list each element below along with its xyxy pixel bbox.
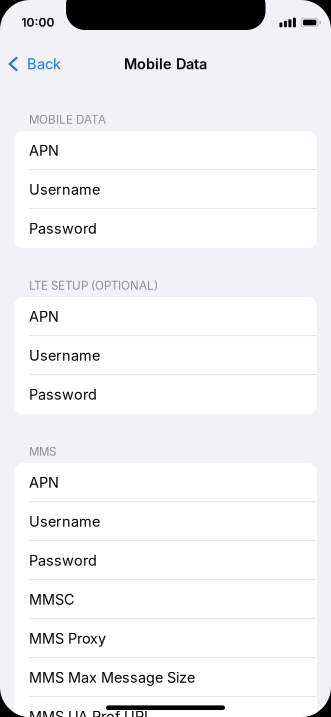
button[interactable]: Password (14, 541, 317, 580)
staticText: Username (29, 181, 100, 198)
button[interactable]: MMSC (14, 580, 317, 619)
button[interactable]: Password (14, 375, 317, 414)
button[interactable]: MMS UA Prof URL (14, 697, 317, 717)
staticText: MOBILE DATA (29, 112, 106, 126)
staticText: Password (29, 386, 97, 403)
button[interactable]: APN (14, 297, 317, 336)
button[interactable]: Password (14, 209, 317, 248)
button[interactable]: APN (14, 131, 317, 170)
staticText: APN (29, 474, 59, 491)
staticText: MMS Proxy (29, 630, 106, 647)
staticText: MMS Max Message Size (29, 669, 195, 686)
staticText: 10:00 (21, 15, 54, 30)
button[interactable]: Username (14, 336, 317, 375)
staticText: Back (27, 55, 61, 73)
staticText: MMSC (29, 591, 75, 608)
button[interactable]: Back (0, 49, 71, 79)
button[interactable]: APN (14, 463, 317, 502)
staticText: Password (29, 220, 97, 237)
button[interactable]: Username (14, 502, 317, 541)
button[interactable]: MMS Proxy (14, 619, 317, 658)
staticText: Username (29, 513, 100, 530)
staticText: MMS UA Prof URL (29, 708, 152, 717)
staticText: MMS (29, 445, 56, 459)
staticText: APN (29, 142, 59, 159)
staticText: LTE SETUP (OPTIONAL) (29, 278, 158, 292)
button[interactable]: MMS Max Message Size (14, 658, 317, 697)
staticText: Username (29, 347, 100, 364)
staticText: Password (29, 552, 97, 569)
staticText: Mobile Data (124, 55, 207, 73)
staticText: APN (29, 308, 59, 325)
button[interactable]: Username (14, 170, 317, 209)
